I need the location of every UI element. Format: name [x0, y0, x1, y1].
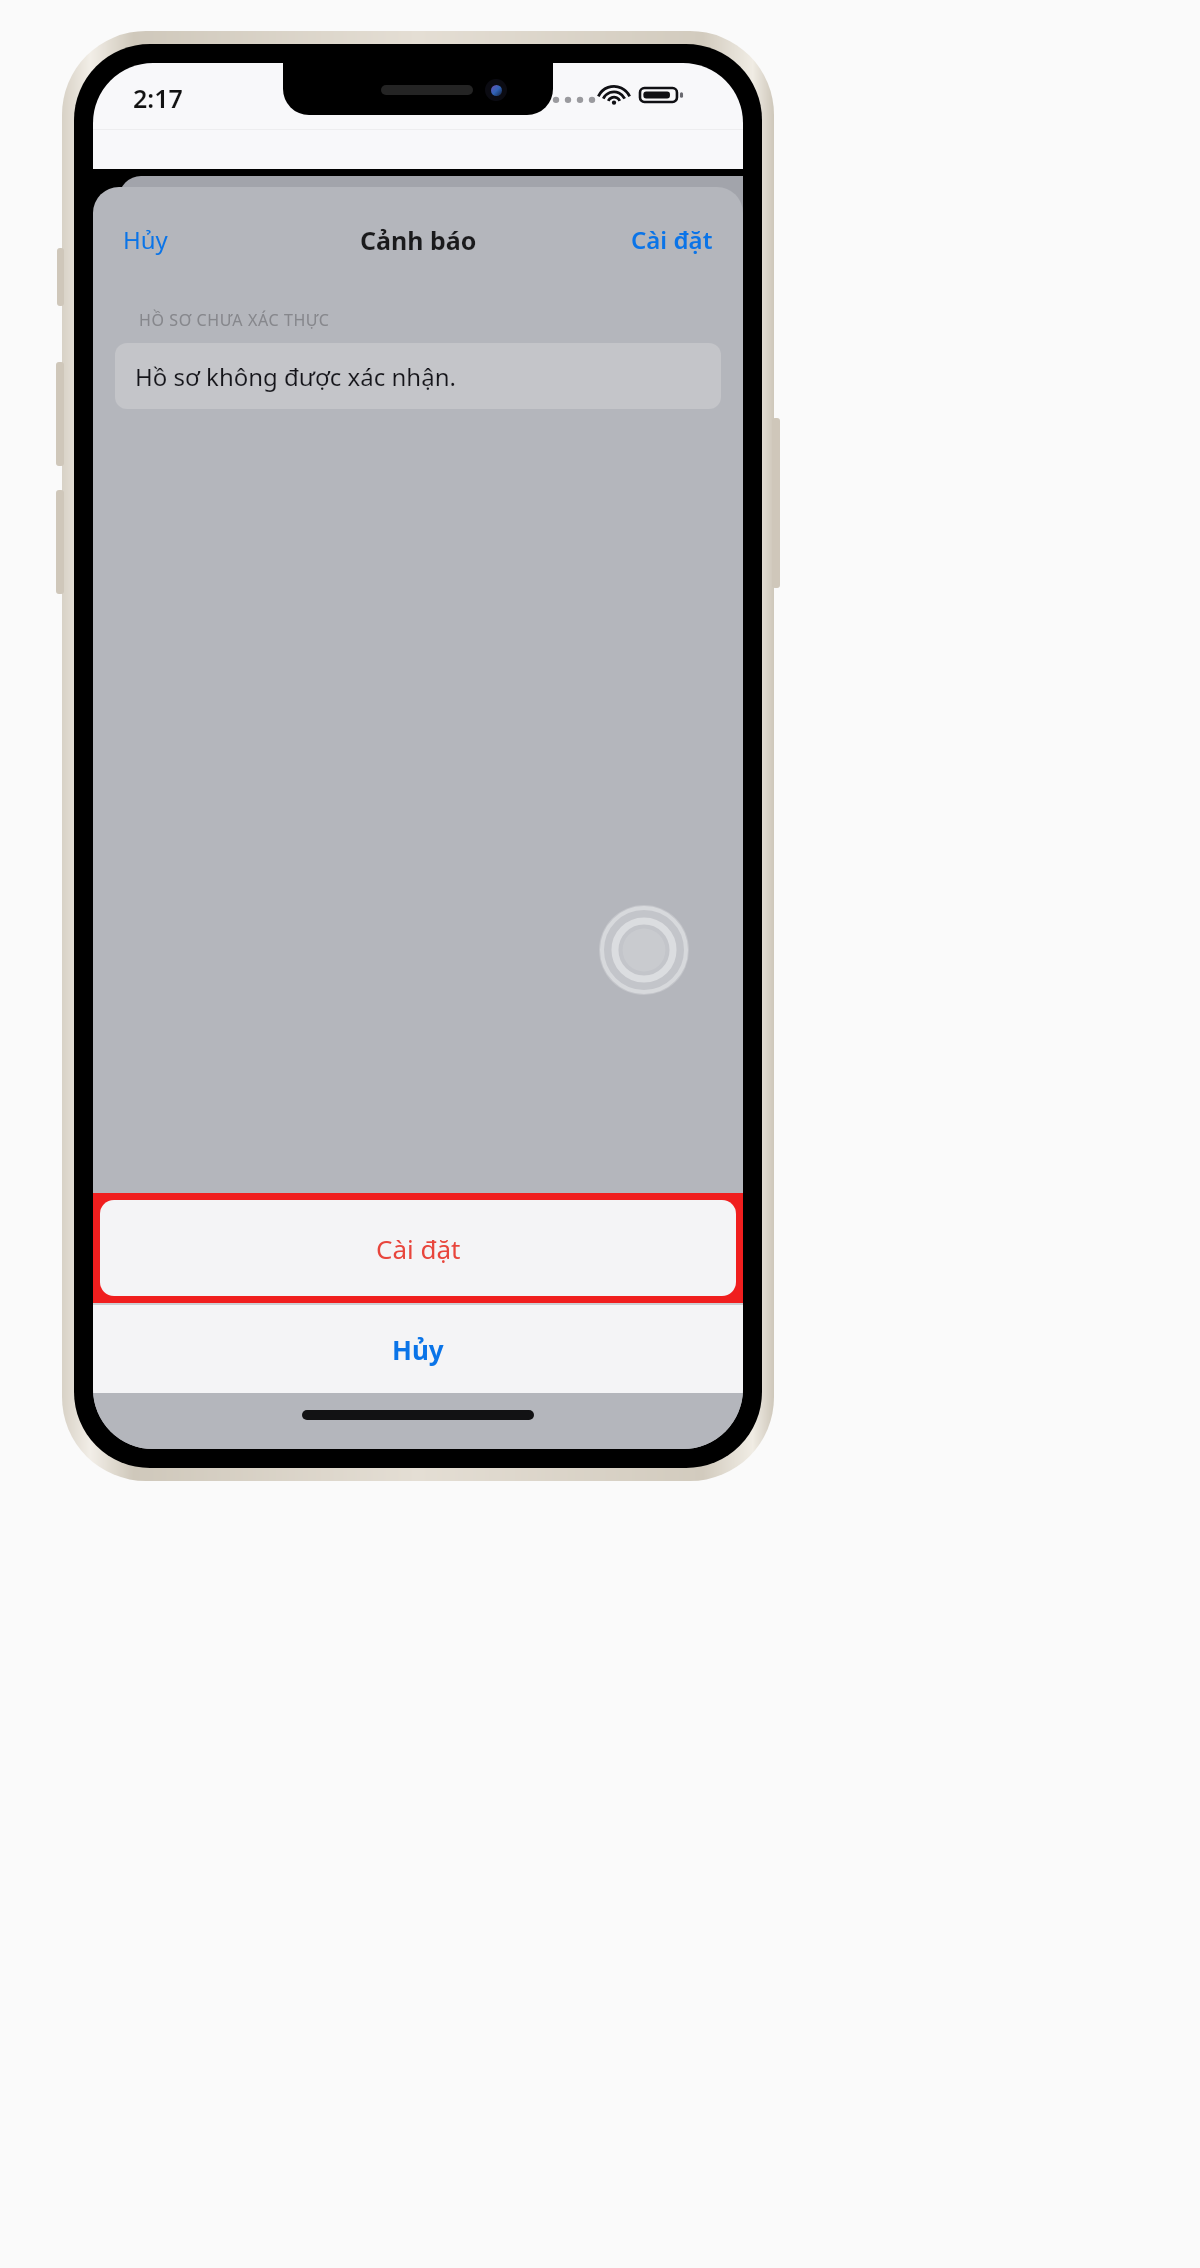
button[interactable]: Hồ sơ không được xác nhận.	[115, 343, 721, 409]
staticText: 2:17	[133, 81, 183, 115]
staticText: Hủy	[123, 223, 168, 256]
other: Touch indicator	[599, 905, 689, 995]
button[interactable]: Cài đặt	[619, 215, 725, 264]
button[interactable]: Hủy	[93, 1305, 743, 1393]
button[interactable]: Hủy	[111, 215, 180, 264]
staticText: HỒ SƠ CHƯA XÁC THỰC	[139, 309, 330, 331]
button[interactable]: Cài đặt	[100, 1200, 736, 1296]
staticText: Hồ sơ không được xác nhận.	[135, 360, 456, 393]
staticText: Hủy	[392, 1332, 444, 1367]
staticText: Cài đặt	[376, 1231, 461, 1266]
staticText: Cảnh báo	[360, 223, 477, 257]
staticText: Cài đặt	[631, 223, 713, 256]
